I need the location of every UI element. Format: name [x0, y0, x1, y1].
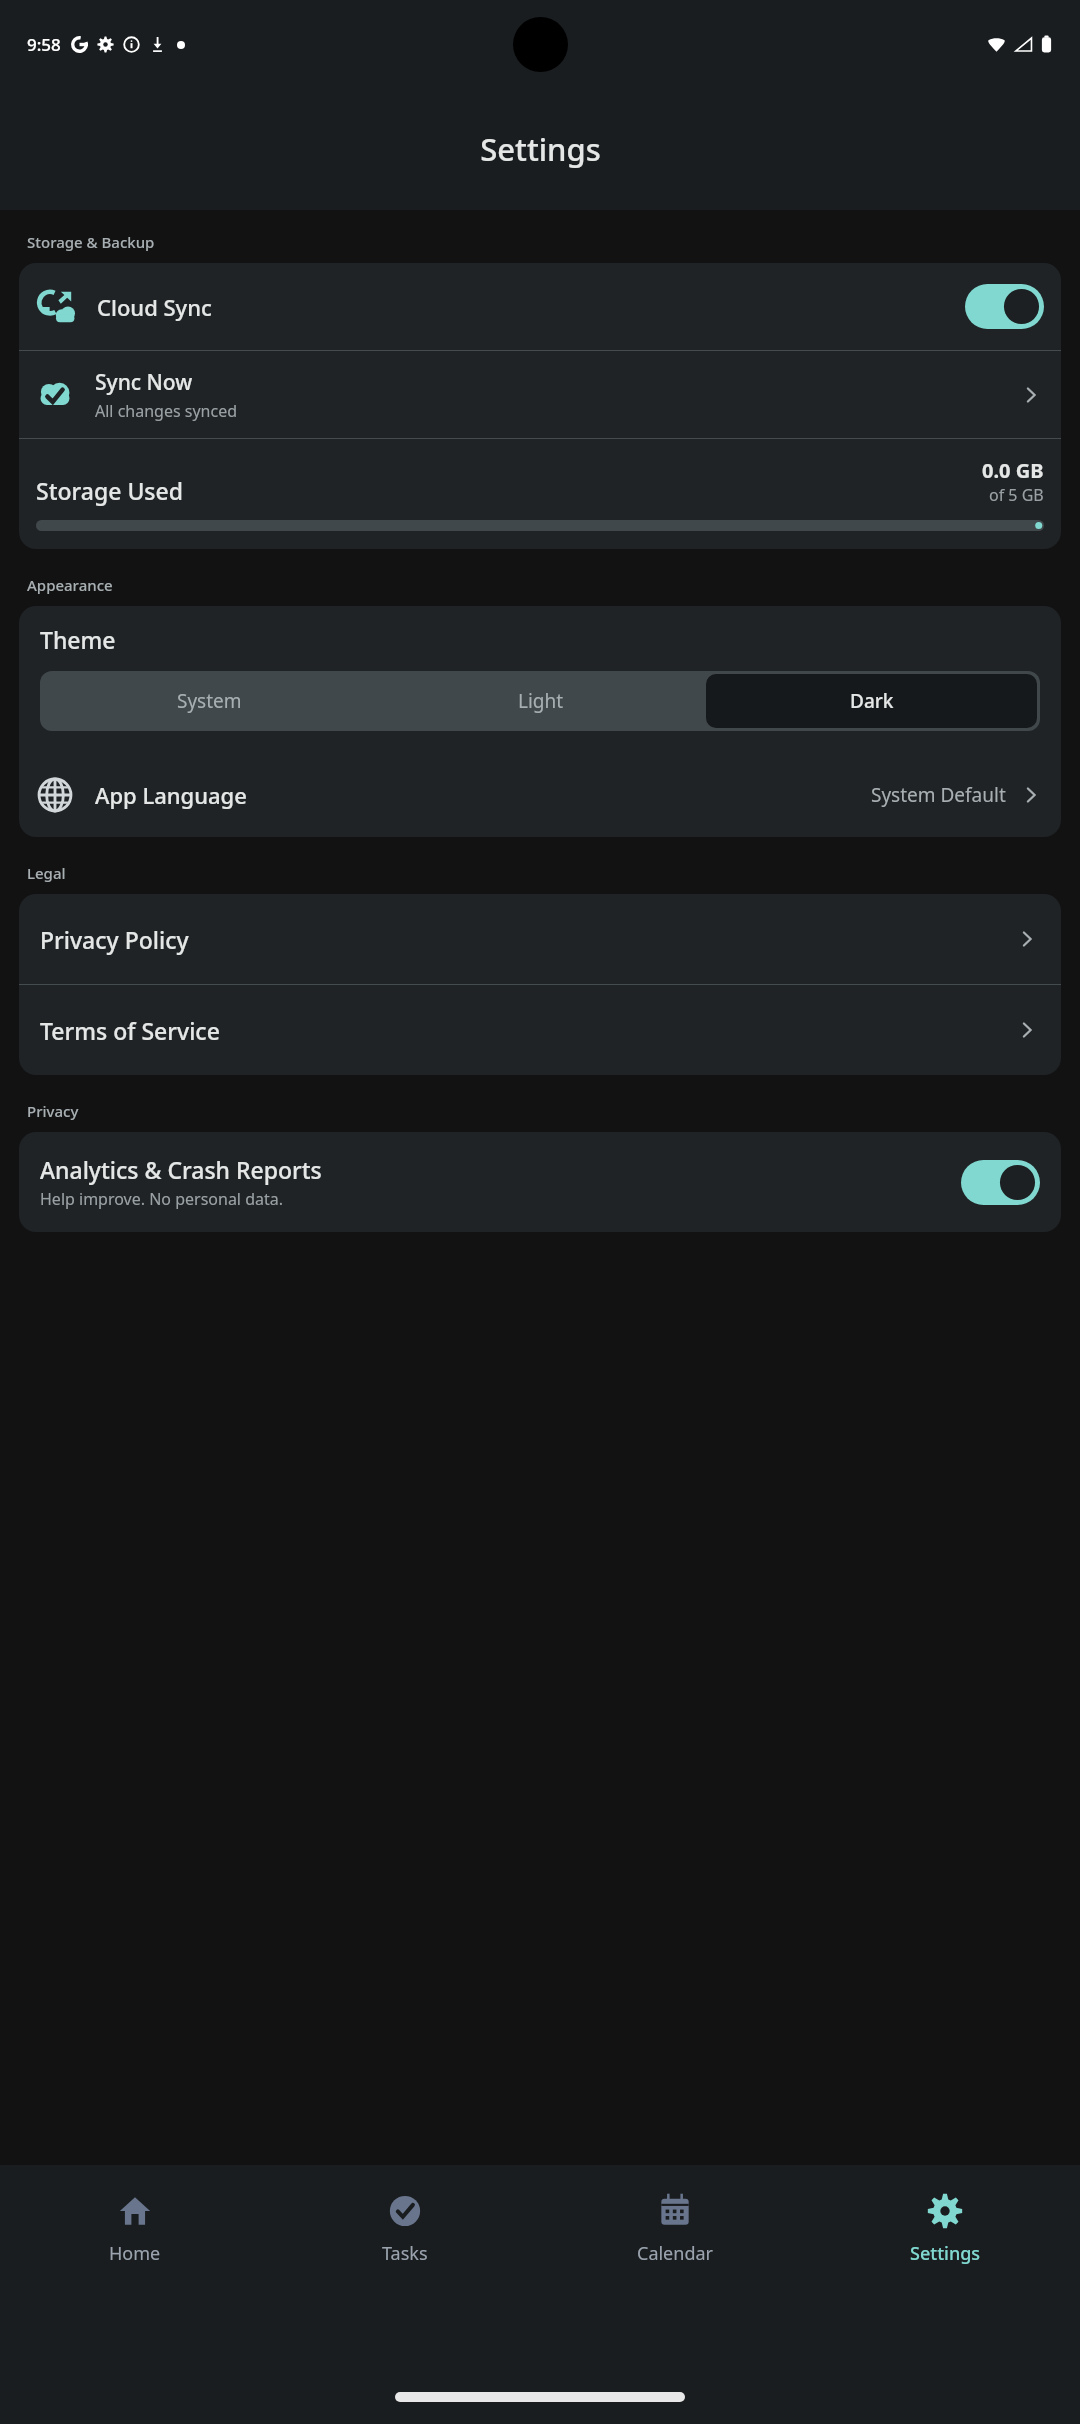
staticText: System	[177, 688, 242, 714]
button[interactable]: Toggle	[965, 284, 1044, 329]
staticText: Privacy Policy	[40, 924, 189, 955]
staticText: Analytics & Crash Reports	[40, 1154, 322, 1185]
staticText: Help improve. No personal data.	[40, 1188, 284, 1210]
staticText: 0.0 GB	[982, 457, 1044, 484]
staticText: Light	[518, 688, 564, 714]
button[interactable]: App Language	[19, 753, 1061, 837]
staticText: Sync Now	[95, 368, 193, 397]
staticText: Calendar	[637, 2241, 713, 2266]
staticText: Appearance	[27, 575, 113, 595]
staticText: of 5 GB	[989, 484, 1044, 506]
staticText: Storage Used	[36, 475, 183, 506]
button[interactable]: Light	[375, 674, 706, 728]
button[interactable]: Dark	[706, 674, 1037, 728]
staticText: Theme	[40, 624, 116, 655]
button[interactable]: Settings	[810, 2187, 1080, 2272]
button[interactable]: Calendar	[540, 2187, 810, 2272]
button[interactable]: Tasks	[270, 2187, 540, 2272]
button[interactable]: Sync Now	[19, 351, 1061, 438]
button[interactable]: Privacy Policy	[19, 894, 1061, 984]
button[interactable]: Toggle	[961, 1160, 1040, 1205]
button[interactable]: Analytics & Crash Reports	[19, 1132, 1061, 1232]
staticText: Privacy	[27, 1101, 79, 1121]
staticText: Home	[109, 2241, 161, 2266]
staticText: Cloud Sync	[97, 292, 212, 322]
staticText: Settings	[910, 2241, 981, 2266]
staticText: Terms of Service	[40, 1015, 220, 1046]
staticText: Dark	[850, 688, 894, 714]
staticText: Legal	[27, 863, 66, 883]
button[interactable]: Home	[0, 2187, 270, 2272]
staticText: 9:58	[27, 33, 61, 56]
staticText: Settings	[480, 128, 601, 170]
button[interactable]: System	[43, 674, 375, 728]
button[interactable]: Terms of Service	[19, 985, 1061, 1075]
button[interactable]: Cloud Sync	[19, 263, 1061, 350]
staticText: Tasks	[382, 2241, 428, 2266]
staticText: System Default	[871, 782, 1006, 808]
staticText: App Language	[95, 780, 247, 810]
staticText: Storage & Backup	[27, 232, 155, 252]
staticText: All changes synced	[95, 400, 238, 422]
